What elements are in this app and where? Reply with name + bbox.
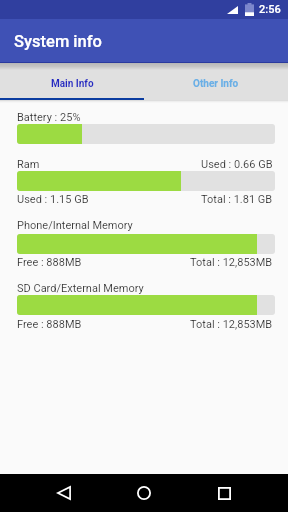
staticText: Phone/Internal Memory [17,219,133,232]
staticText: Used : 1.15 GB [17,193,89,206]
staticText: Other Info [193,78,239,90]
staticText: Total : 1.81 GB [201,193,273,206]
button[interactable]: Home [121,474,167,512]
staticText: Free : 888MB [17,318,82,331]
button[interactable]: Recent apps [201,474,247,512]
staticText: SD Card/External Memory [17,282,144,295]
button[interactable]: Back [41,474,87,512]
staticText: Ram [17,158,40,171]
staticText: Total : 12,853MB [190,256,273,269]
staticText: Free : 888MB [17,256,82,269]
staticText: Used : 0.66 GB [201,158,273,171]
button[interactable]: Other Info [144,63,288,100]
staticText: 2:56 [259,3,281,16]
staticText: Battery : 25% [17,111,81,124]
button[interactable]: Main Info [0,63,144,100]
staticText: System info [14,32,102,51]
staticText: Main Info [51,78,94,90]
staticText: Total : 12,853MB [190,318,273,331]
